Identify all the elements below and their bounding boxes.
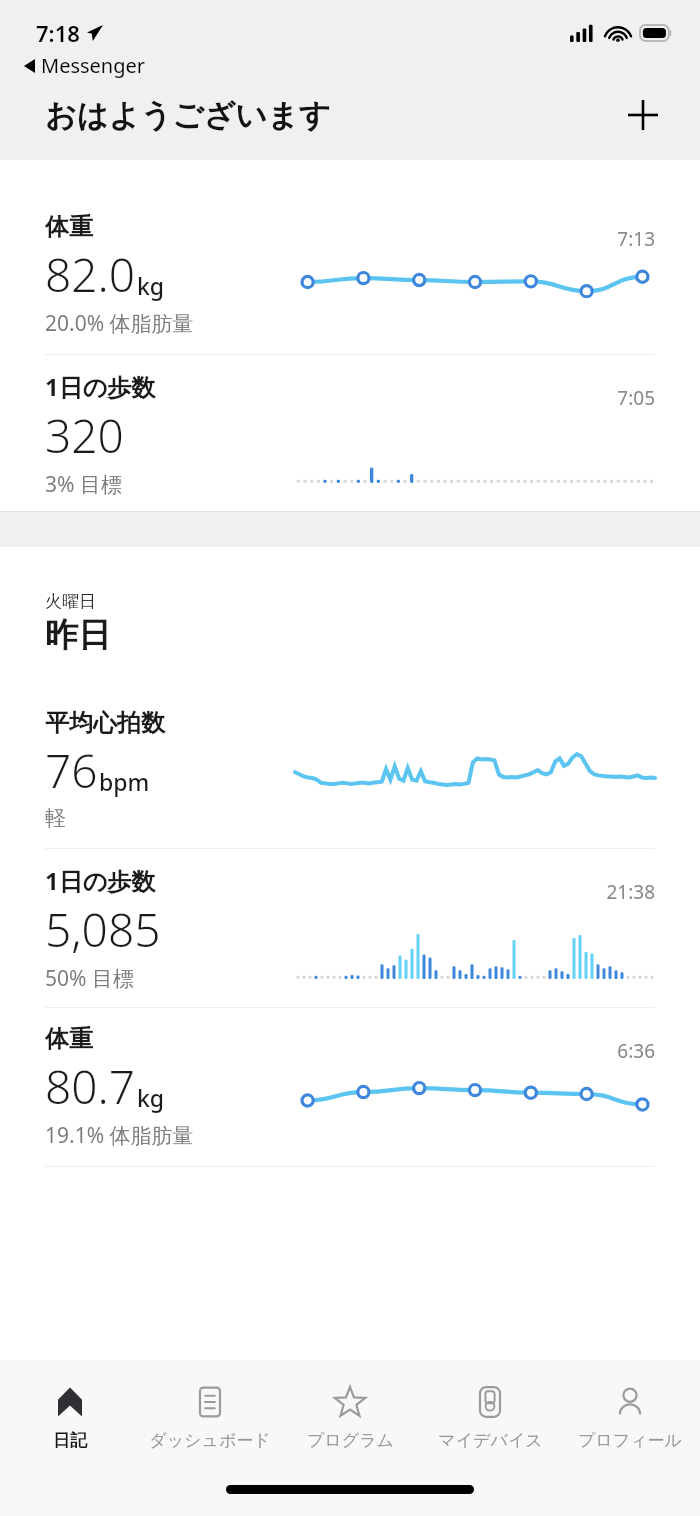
staticText: 7:18 xyxy=(36,18,80,48)
staticText: おはようございます xyxy=(45,96,331,135)
staticText: 体重 xyxy=(45,1024,93,1054)
staticText: プログラム xyxy=(307,1430,394,1451)
button[interactable]: 追加 xyxy=(620,92,666,138)
staticText: 日記 xyxy=(53,1430,87,1451)
staticText: bpm xyxy=(99,766,150,797)
button[interactable]: ダッシュボード xyxy=(140,1360,280,1472)
staticText: 21:38 xyxy=(606,879,655,905)
button[interactable]: マイデバイス xyxy=(420,1360,560,1472)
button[interactable]: 1日の歩数 xyxy=(0,369,700,499)
staticText: 320 xyxy=(45,404,124,467)
button[interactable]: 日記 xyxy=(0,1360,140,1472)
staticText: kg xyxy=(137,1082,165,1113)
staticText: 火曜日 xyxy=(45,591,96,612)
staticText: プロフィール xyxy=(578,1430,682,1451)
staticText: 3% 目標 xyxy=(45,470,122,499)
staticText: ダッシュボード xyxy=(149,1430,271,1451)
button[interactable]: プログラム xyxy=(280,1360,420,1472)
staticText: マイデバイス xyxy=(438,1430,543,1451)
staticText: 19.1% 体脂肪量 xyxy=(45,1121,194,1150)
staticText: 82.0 xyxy=(45,243,136,306)
staticText: 軽 xyxy=(45,805,66,831)
staticText: 76 xyxy=(45,739,98,802)
staticText: 昨日 xyxy=(45,614,111,656)
button[interactable]: 平均心拍数 xyxy=(0,704,700,834)
staticText: 体重 xyxy=(45,212,93,242)
staticText: kg xyxy=(137,270,165,301)
staticText: 7:13 xyxy=(617,226,655,252)
button[interactable]: プロフィール xyxy=(560,1360,700,1472)
button[interactable]: 体重 xyxy=(0,210,700,340)
staticText: 20.0% 体脂肪量 xyxy=(45,309,194,338)
staticText: 5,085 xyxy=(45,898,161,961)
staticText: 50% 目標 xyxy=(45,964,134,993)
staticText: 平均心拍数 xyxy=(45,708,165,738)
staticText: 1日の歩数 xyxy=(45,370,156,403)
button[interactable]: Messenger xyxy=(18,50,152,81)
staticText: Messenger xyxy=(41,52,146,79)
staticText: 6:36 xyxy=(617,1038,655,1064)
staticText: 80.7 xyxy=(45,1055,136,1118)
button[interactable]: 1日の歩数 xyxy=(0,863,700,993)
button[interactable]: 体重 xyxy=(0,1022,700,1152)
staticText: 1日の歩数 xyxy=(45,864,156,897)
staticText: 7:05 xyxy=(617,385,655,411)
